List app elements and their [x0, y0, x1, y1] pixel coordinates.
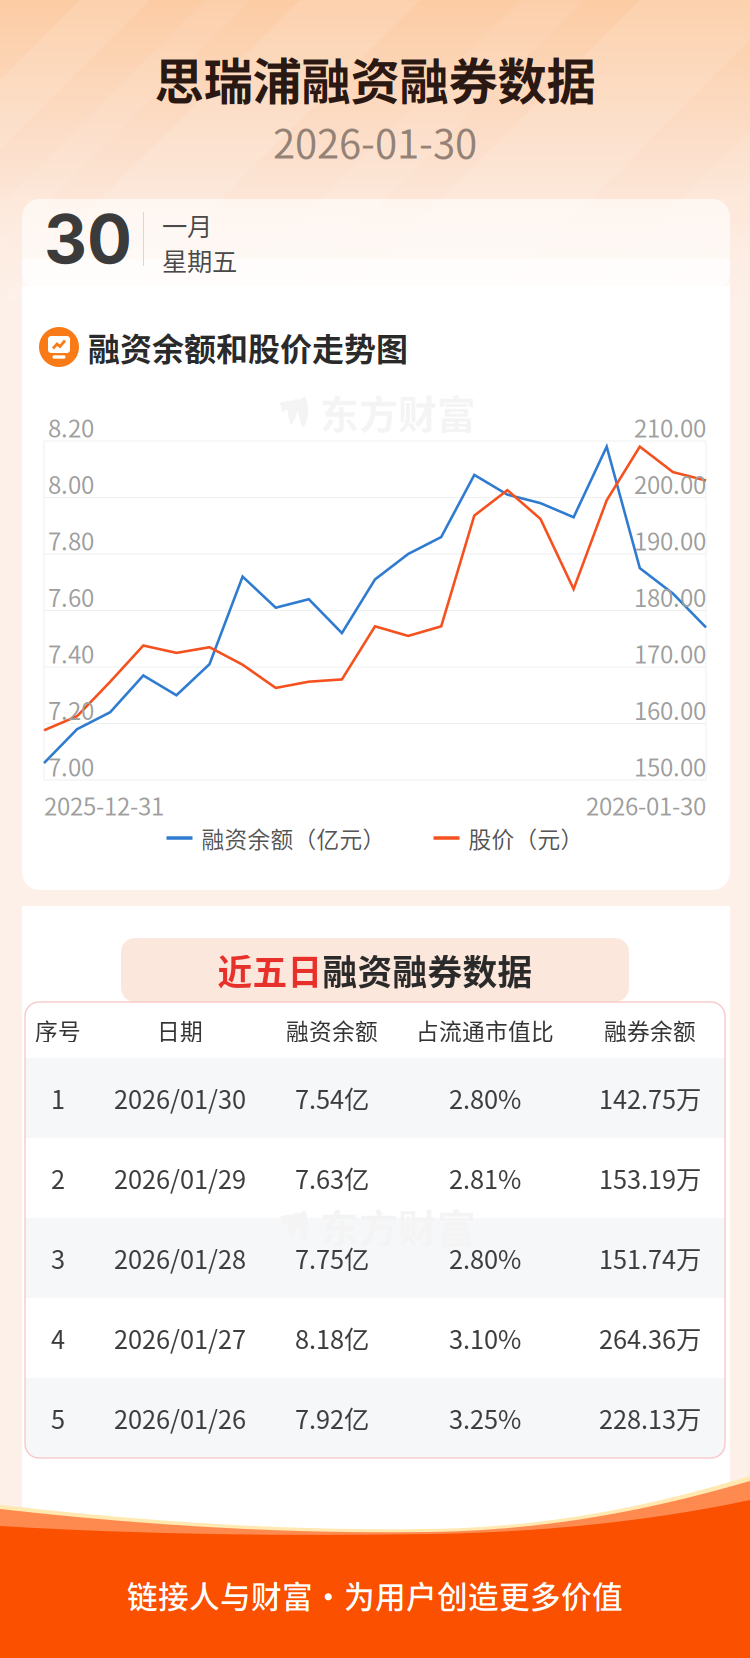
staticText: 融资融券数据 [322, 945, 532, 995]
staticText: 融资余额 [286, 1014, 378, 1046]
staticText: 东方财富 [320, 1198, 476, 1254]
staticText: 5 [51, 1400, 65, 1436]
staticText: 2026/01/26 [114, 1400, 246, 1436]
staticText: 2.81% [449, 1160, 521, 1196]
staticText: 160.00 [634, 692, 706, 727]
staticText: 链接人与财富·为用户创造更多价值 [127, 1573, 623, 1617]
staticText: 2.80% [449, 1080, 521, 1116]
staticText: 200.00 [634, 466, 706, 501]
staticText: 264.36万 [599, 1320, 701, 1356]
staticText: 180.00 [634, 579, 706, 614]
staticText: 1 [51, 1080, 65, 1116]
staticText: 7.63亿 [295, 1160, 369, 1196]
staticText: 153.19万 [599, 1160, 701, 1196]
staticText: 8.18亿 [295, 1320, 369, 1356]
staticText: 7.20 [48, 692, 94, 727]
staticText: 2026/01/28 [114, 1240, 246, 1276]
staticText: 190.00 [634, 523, 706, 557]
staticText: 2026-01-30 [586, 788, 706, 822]
staticText: 思瑞浦融资融券数据 [154, 42, 595, 114]
staticText: 7.92亿 [295, 1400, 369, 1436]
staticText: 3 [51, 1240, 65, 1276]
staticText: 8.20 [48, 410, 94, 444]
staticText: 228.13万 [599, 1400, 701, 1436]
staticText: 142.75万 [599, 1080, 701, 1116]
staticText: 2026/01/29 [114, 1160, 246, 1196]
staticText: 2.80% [449, 1240, 521, 1276]
staticText: 股价（元） [468, 822, 583, 854]
staticText: 7.00 [48, 749, 94, 783]
staticText: 2026-01-30 [273, 112, 477, 170]
staticText: 7.60 [48, 579, 94, 614]
staticText: 一月 [162, 207, 212, 243]
staticText: 星期五 [162, 242, 237, 278]
staticText: 7.54亿 [295, 1080, 369, 1116]
staticText: 融资余额和股价走势图 [88, 324, 408, 370]
staticText: 3.25% [449, 1400, 521, 1436]
staticText: 序号 [35, 1014, 81, 1046]
staticText: 7.80 [48, 523, 94, 557]
staticText: 151.74万 [599, 1240, 701, 1276]
staticText: 2025-12-31 [44, 788, 164, 822]
staticText: 东方财富 [320, 384, 476, 440]
staticText: 8.00 [48, 466, 94, 501]
staticText: 30 [44, 199, 132, 279]
staticText: 210.00 [634, 410, 706, 444]
staticText: 日期 [157, 1014, 203, 1046]
staticText: 2026/01/27 [114, 1320, 246, 1356]
staticText: 170.00 [634, 636, 706, 670]
staticText: 占流通市值比 [416, 1014, 554, 1046]
staticText: 融资余额（亿元） [201, 822, 385, 854]
staticText: 150.00 [634, 749, 706, 783]
staticText: 近五日 [217, 945, 322, 995]
staticText: 4 [51, 1320, 65, 1356]
staticText: 7.75亿 [295, 1240, 369, 1276]
staticText: 3.10% [449, 1320, 521, 1356]
staticText: 2 [51, 1160, 65, 1196]
staticText: 7.40 [48, 636, 94, 670]
staticText: 融券余额 [604, 1014, 696, 1046]
staticText: 2026/01/30 [114, 1080, 246, 1116]
